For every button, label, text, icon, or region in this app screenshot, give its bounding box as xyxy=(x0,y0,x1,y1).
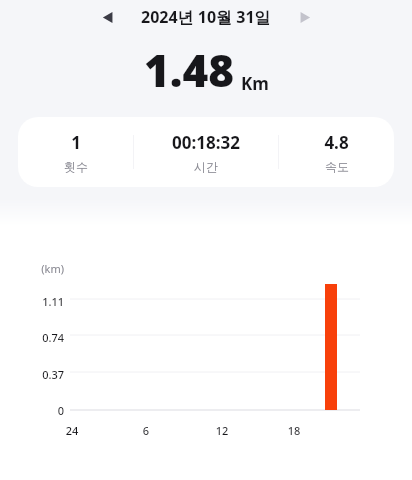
staticText: 6 xyxy=(126,423,166,438)
button[interactable]: 1 xyxy=(18,117,394,187)
staticText: 24 xyxy=(52,423,92,438)
staticText: 시간 xyxy=(194,159,218,174)
button[interactable]: 00:18:32 xyxy=(134,131,278,174)
staticText: 18 xyxy=(274,423,314,438)
staticText: 횟수 xyxy=(64,159,88,174)
button[interactable]: Next day xyxy=(290,2,320,32)
staticText: 12 xyxy=(202,423,242,438)
staticText: 0 xyxy=(14,403,64,418)
staticText: 1 xyxy=(71,131,81,154)
staticText: Km xyxy=(241,72,269,95)
staticText: (km) xyxy=(14,261,64,276)
staticText: 4.8 xyxy=(324,131,349,154)
staticText: 0.74 xyxy=(14,330,64,345)
staticText: 2024년 10월 31일 xyxy=(141,6,271,28)
staticText: 1.11 xyxy=(14,294,64,309)
staticText: 0.37 xyxy=(14,367,64,382)
button[interactable]: Previous day xyxy=(92,2,122,32)
staticText: 속도 xyxy=(325,159,349,174)
button[interactable]: 1 xyxy=(18,131,133,174)
staticText: 00:18:32 xyxy=(172,131,240,154)
staticText: 1.48 xyxy=(144,40,235,100)
button[interactable]: 4.8 xyxy=(279,131,394,174)
